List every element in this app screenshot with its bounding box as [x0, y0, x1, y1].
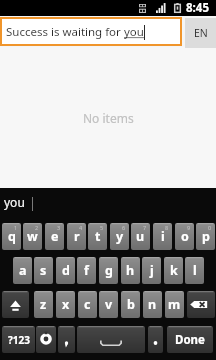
staticText: f: [84, 262, 89, 279]
staticText: 1: [14, 224, 18, 231]
button[interactable]: c: [78, 291, 97, 318]
button[interactable]: x: [56, 291, 75, 318]
button[interactable]: e: [45, 223, 64, 250]
staticText: ?123: [8, 333, 30, 347]
button[interactable]: r: [67, 223, 86, 250]
staticText: w: [27, 228, 38, 245]
button[interactable]: Period: [148, 326, 163, 353]
staticText: x: [62, 296, 70, 313]
staticText: 4: [79, 224, 83, 231]
staticText: o: [181, 228, 189, 245]
staticText: h: [126, 262, 135, 279]
staticText: b: [127, 296, 135, 313]
button[interactable]: Space: [77, 326, 145, 353]
staticText: Done: [175, 332, 205, 348]
button[interactable]: Comma: [58, 326, 75, 353]
button[interactable]: Shift: [2, 291, 29, 318]
button[interactable]: w: [23, 223, 42, 250]
button[interactable]: l: [185, 257, 204, 284]
staticText: v: [105, 296, 113, 313]
staticText: 8: [165, 224, 169, 231]
button[interactable]: g: [99, 257, 118, 284]
staticText: m: [168, 296, 181, 313]
staticText: e: [51, 228, 59, 245]
staticText: r: [74, 228, 80, 245]
staticText: t: [95, 228, 101, 245]
button[interactable]: p: [196, 223, 215, 250]
button[interactable]: Settings: [36, 326, 56, 353]
staticText: j: [150, 262, 154, 279]
staticText: a: [19, 262, 27, 279]
staticText: k: [170, 262, 178, 279]
staticText: 0: [208, 224, 212, 231]
staticText: n: [148, 296, 157, 313]
button[interactable]: f: [77, 257, 96, 284]
staticText: p: [202, 228, 210, 245]
button[interactable]: j: [142, 257, 161, 284]
staticText: c: [84, 296, 91, 313]
staticText: u: [136, 228, 145, 245]
button[interactable]: h: [121, 257, 140, 284]
button[interactable]: t: [88, 223, 107, 250]
button[interactable]: o: [175, 223, 194, 250]
button[interactable]: EN: [185, 18, 216, 48]
button[interactable]: v: [99, 291, 118, 318]
button[interactable]: i: [153, 223, 172, 250]
staticText: you: [124, 24, 144, 40]
staticText: s: [40, 262, 47, 279]
staticText: Success is waiting for: [6, 24, 124, 40]
staticText: No items: [83, 110, 134, 126]
staticText: 6: [122, 224, 126, 231]
staticText: z: [40, 296, 47, 313]
button[interactable]: y: [110, 223, 129, 250]
button[interactable]: ?123: [2, 326, 35, 353]
button[interactable]: Backspace: [187, 291, 215, 318]
button[interactable]: k: [164, 257, 183, 284]
button[interactable]: s: [34, 257, 53, 284]
button[interactable]: Success is waiting for: [0, 17, 182, 46]
button[interactable]: m: [165, 291, 184, 318]
staticText: you: [4, 194, 25, 210]
button[interactable]: q: [2, 223, 21, 250]
staticText: 8:45: [186, 0, 209, 16]
staticText: EN: [194, 26, 208, 40]
staticText: 7: [143, 224, 147, 231]
button[interactable]: u: [131, 223, 150, 250]
staticText: d: [62, 262, 70, 279]
staticText: 9: [187, 224, 191, 231]
button[interactable]: b: [121, 291, 140, 318]
button[interactable]: z: [34, 291, 53, 318]
button[interactable]: n: [143, 291, 162, 318]
staticText: g: [105, 262, 113, 279]
staticText: 5: [100, 224, 104, 231]
button[interactable]: a: [13, 257, 32, 284]
staticText: l: [193, 262, 197, 279]
button[interactable]: d: [56, 257, 75, 284]
staticText: 2: [35, 224, 39, 231]
staticText: y: [116, 228, 124, 245]
staticText: i: [161, 228, 165, 245]
button[interactable]: Done: [167, 326, 213, 353]
staticText: 3: [57, 224, 61, 231]
staticText: q: [8, 228, 16, 245]
